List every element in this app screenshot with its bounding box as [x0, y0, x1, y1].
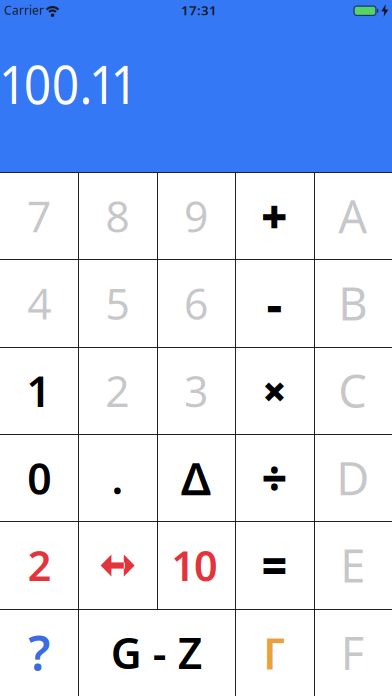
- button[interactable]: 5: [78, 259, 157, 347]
- staticText: A: [338, 186, 367, 246]
- button[interactable]: E: [314, 521, 392, 609]
- staticText: 8: [105, 187, 130, 244]
- button[interactable]: C: [314, 347, 392, 434]
- staticText: Carrier: [4, 2, 44, 18]
- button[interactable]: 6: [157, 259, 235, 347]
- button[interactable]: 2: [0, 521, 78, 609]
- staticText: 1: [29, 362, 50, 419]
- staticText: F: [341, 622, 365, 682]
- button[interactable]: 4: [0, 259, 78, 347]
- button[interactable]: 8: [78, 172, 157, 259]
- staticText: Δ: [181, 448, 211, 508]
- staticText: 6: [184, 275, 208, 331]
- button[interactable]: B: [314, 259, 392, 347]
- staticText: -: [266, 270, 282, 336]
- staticText: 0: [27, 449, 52, 506]
- staticText: 2: [106, 362, 130, 419]
- staticText: ?: [28, 620, 50, 684]
- button[interactable]: 10: [157, 521, 235, 609]
- staticText: 5: [106, 275, 130, 331]
- button[interactable]: 7: [0, 172, 78, 259]
- button[interactable]: Δ: [157, 434, 235, 521]
- staticText: ÷: [261, 448, 287, 507]
- staticText: .: [112, 449, 124, 506]
- staticText: D: [336, 448, 369, 508]
- button[interactable]: =: [235, 521, 314, 609]
- button[interactable]: 3: [157, 347, 235, 434]
- button[interactable]: ?: [0, 609, 78, 696]
- staticText: 2: [28, 538, 51, 592]
- staticText: 7: [28, 187, 50, 244]
- staticText: ×: [262, 362, 287, 419]
- staticText: +: [261, 186, 288, 246]
- button[interactable]: .: [78, 434, 157, 521]
- staticText: =: [261, 536, 287, 594]
- button[interactable]: A: [314, 172, 392, 259]
- staticText: B: [338, 273, 367, 333]
- staticText: 17:31: [181, 1, 217, 19]
- staticText: [364, 0, 368, 21]
- staticText: G - Z: [111, 624, 203, 681]
- staticText: 10: [173, 538, 218, 592]
- button[interactable]: Convert between bases: [78, 521, 157, 609]
- button[interactable]: -: [235, 259, 314, 347]
- button[interactable]: 0: [0, 434, 78, 521]
- button[interactable]: D: [314, 434, 392, 521]
- button[interactable]: ×: [235, 347, 314, 434]
- button[interactable]: Γ: [235, 609, 314, 696]
- button[interactable]: ÷: [235, 434, 314, 521]
- button[interactable]: 9: [157, 172, 235, 259]
- staticText: 3: [184, 362, 208, 419]
- button[interactable]: 1: [0, 347, 78, 434]
- staticText: C: [338, 360, 367, 420]
- button[interactable]: G - Z: [78, 609, 235, 696]
- button[interactable]: F: [314, 609, 392, 696]
- staticText: 100.11: [2, 48, 150, 119]
- staticText: 4: [27, 275, 51, 331]
- staticText: 9: [184, 187, 208, 244]
- button[interactable]: +: [235, 172, 314, 259]
- staticText: E: [340, 535, 365, 595]
- button[interactable]: 2: [78, 347, 157, 434]
- staticText: Γ: [263, 623, 286, 681]
